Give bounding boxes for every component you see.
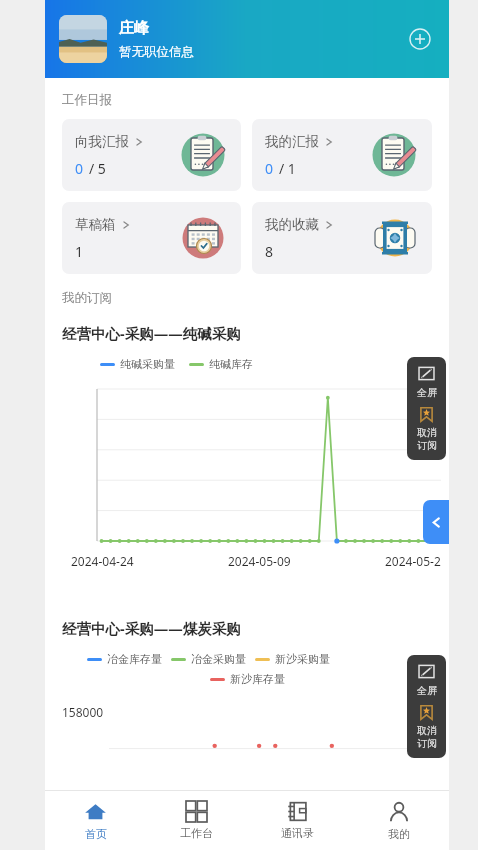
button[interactable]: 草稿箱 [62,202,241,274]
staticText: 1 [75,242,84,261]
button[interactable]: Previous [423,500,449,544]
staticText: 全屏 [417,386,437,399]
staticText: 冶金采购量 [191,652,246,666]
staticText: 订阅 [417,737,437,750]
staticText: 取消 [417,426,437,439]
staticText: 首页 [85,827,107,841]
staticText: 工作日报 [62,92,112,108]
staticText: 庄峰 [119,19,149,38]
staticText: 2024-05-09 [228,553,291,569]
staticText: 我的收藏 [265,216,319,233]
button[interactable]: 工作台 [146,791,247,850]
staticText: 暂无职位信息 [119,44,194,60]
staticText: / 5 [89,159,106,178]
button[interactable]: Add [405,24,435,54]
staticText: 工作台 [180,826,213,840]
staticText: 2024-05-2 [385,553,441,569]
staticText: / 1 [279,159,296,178]
staticText: 我的订阅 [62,290,112,306]
staticText: 2024-04-24 [71,553,134,569]
staticText: 向我汇报 [75,133,129,150]
staticText: 8 [265,242,274,261]
staticText: 冶金库存量 [107,652,162,666]
staticText: 新沙库存量 [230,672,285,686]
button[interactable]: 全屏 [407,655,446,704]
button[interactable]: 我的 [348,791,449,850]
button[interactable]: 向我汇报 [62,119,241,191]
button[interactable]: 取消 [407,704,446,758]
staticText: 草稿箱 [75,216,116,233]
button[interactable]: 我的汇报 [252,119,432,191]
staticText: 经营中心-采购——纯碱采购 [62,323,241,343]
staticText: 新沙采购量 [275,652,330,666]
staticText: 取消 [417,724,437,737]
staticText: 我的汇报 [265,133,319,150]
staticText: 全屏 [417,684,437,697]
button[interactable]: 通讯录 [247,791,348,850]
staticText: 158000 [62,704,104,720]
staticText: 通讯录 [281,826,314,840]
staticText: 经营中心-采购——煤炭采购 [62,618,241,638]
button[interactable]: 我的收藏 [252,202,432,274]
staticText: 我的 [388,827,410,841]
button[interactable]: 全屏 [407,357,446,406]
staticText: 纯碱采购量 [120,357,175,371]
button[interactable] [59,15,107,63]
staticText: 纯碱库存 [209,357,253,371]
staticText: 0 [265,159,274,178]
staticText: 0 [75,159,84,178]
button[interactable]: 取消 [407,406,446,460]
staticText: 订阅 [417,439,437,452]
button[interactable]: 首页 [45,791,146,850]
